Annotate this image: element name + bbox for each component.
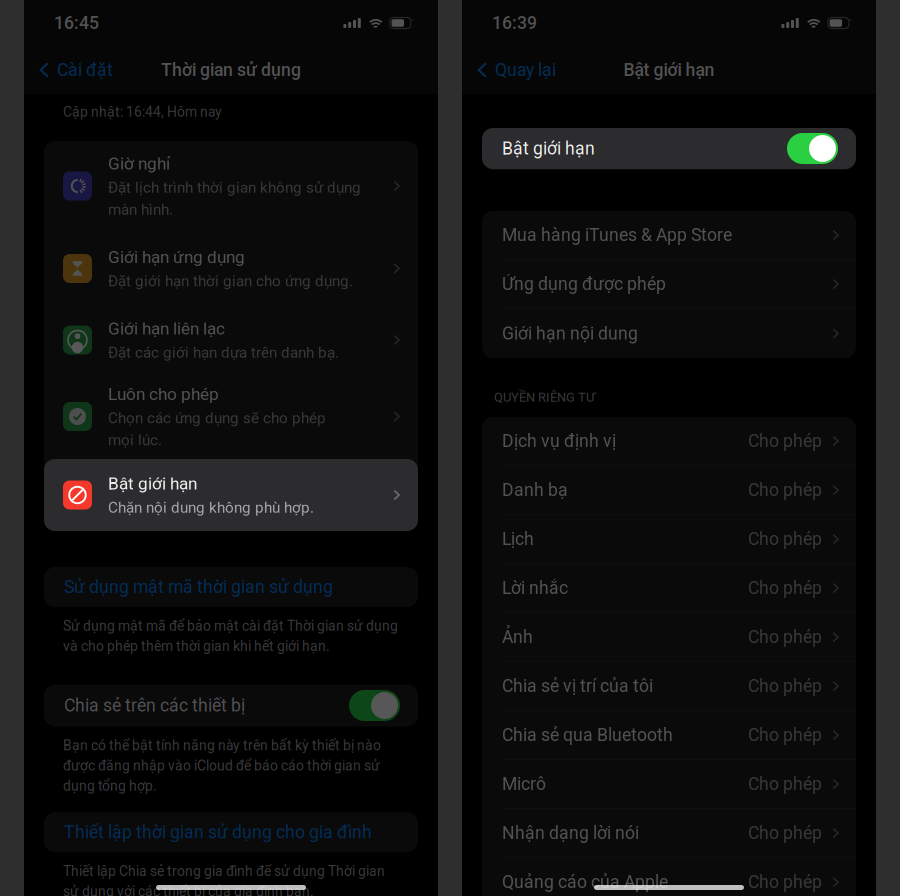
staticText: Mua hàng iTunes & App Store	[502, 225, 732, 245]
button[interactable]: Ảnh	[482, 613, 856, 662]
button[interactable]: Cài đặt	[32, 52, 117, 88]
button[interactable]: Micrô	[482, 760, 856, 809]
staticText: Ứng dụng được phép	[502, 274, 666, 294]
staticText: Đặt các giới hạn dựa trên danh bạ.	[108, 344, 339, 361]
button[interactable]: Dịch vụ định vị	[482, 417, 856, 466]
staticText: Cho phép	[748, 480, 822, 500]
staticText: Cho phép	[748, 872, 822, 892]
staticText: Lịch	[502, 529, 534, 549]
staticText: Chặn nội dung không phù hợp.	[108, 499, 314, 516]
staticText: Bật giới hạn	[502, 138, 595, 159]
staticText: 16:45	[54, 13, 99, 33]
staticText: Cập nhật: 16:44, Hôm nay	[63, 104, 222, 120]
staticText: Thời gian sử dụng	[161, 60, 301, 80]
button[interactable]: Lời nhắc	[482, 564, 856, 613]
staticText: Chặn nội dung không phù hợp.	[108, 499, 314, 516]
staticText: Cho phép	[748, 676, 822, 696]
button[interactable]: Lịch	[482, 515, 856, 564]
staticText: Cho phép	[748, 774, 822, 794]
staticText: 16:39	[492, 13, 537, 33]
staticText: Dịch vụ định vị	[502, 431, 616, 451]
staticText: Luôn cho phép	[108, 384, 219, 404]
staticText: Bạn có thể bật tính năng này trên bất kỳ…	[63, 737, 381, 794]
staticText: Thiết lập thời gian sử dụng cho gia đình	[64, 822, 372, 842]
staticText: Chọn các ứng dụng sẽ cho phép mọi lúc.	[108, 409, 326, 449]
staticText: Chia sẻ trên các thiết bị	[64, 695, 245, 716]
staticText: Ảnh	[502, 627, 533, 647]
staticText: Cho phép	[748, 823, 822, 843]
button[interactable]: Giới hạn liên lạc	[44, 306, 418, 374]
button[interactable]: Sử dụng mật mã thời gian sử dụng	[44, 567, 418, 607]
button[interactable]: Quảng cáo của Apple	[482, 858, 856, 896]
staticText: Quảng cáo của Apple	[502, 872, 668, 892]
button[interactable]: Chia sẻ vị trí của tôi	[482, 662, 856, 711]
staticText: Chia sẻ qua Bluetooth	[502, 725, 673, 745]
staticText: Danh bạ	[502, 480, 568, 500]
staticText: Bật giới hạn	[108, 473, 197, 494]
button[interactable]: Giới hạn ứng dụng	[44, 231, 418, 306]
button[interactable]: Bật giới hạn	[482, 129, 856, 170]
staticText: Sử dụng mật mã để bảo mật cài đặt Thời g…	[63, 618, 398, 654]
button[interactable]: Giờ nghỉ	[44, 141, 418, 231]
button[interactable]: Danh bạ	[482, 466, 856, 515]
staticText: Quay lại	[495, 60, 556, 80]
staticText: Nhận dạng lời nói	[502, 823, 639, 843]
staticText: Lời nhắc	[502, 578, 568, 598]
staticText: Thiết lập Chia sẻ trong gia đình để sử d…	[63, 863, 385, 896]
staticText: Giới hạn ứng dụng	[108, 247, 245, 267]
staticText: QUYỀN RIÊNG TƯ	[494, 390, 595, 405]
staticText: Bật giới hạn	[623, 60, 714, 80]
button[interactable]: Mua hàng iTunes & App Store	[482, 211, 856, 260]
staticText: Micrô	[502, 774, 546, 794]
staticText: Cho phép	[748, 725, 822, 745]
button[interactable]: Chia sẻ trên các thiết bị	[44, 684, 418, 726]
button[interactable]: Ứng dụng được phép	[482, 260, 856, 309]
button[interactable]: Bật giới hạn	[482, 128, 856, 169]
button[interactable]: Nhận dạng lời nói	[482, 809, 856, 858]
staticText: Cho phép	[748, 627, 822, 647]
staticText: Giới hạn liên lạc	[108, 318, 225, 339]
staticText: Đặt lịch trình thời gian không sử dụng m…	[108, 179, 361, 218]
staticText: Sử dụng mật mã thời gian sử dụng	[64, 577, 333, 597]
staticText: Cài đặt	[57, 60, 113, 80]
staticText: Cho phép	[748, 529, 822, 549]
staticText: Giới hạn nội dung	[502, 323, 638, 344]
button[interactable]: Thiết lập thời gian sử dụng cho gia đình	[44, 812, 418, 852]
staticText: Bật giới hạn	[502, 139, 595, 160]
button[interactable]: Chia sẻ qua Bluetooth	[482, 711, 856, 760]
button[interactable]: Luôn cho phép	[44, 374, 418, 459]
staticText: Đặt giới hạn thời gian cho ứng dụng.	[108, 272, 353, 290]
button[interactable]: Bật giới hạn	[44, 459, 418, 531]
staticText: Chia sẻ vị trí của tôi	[502, 676, 653, 696]
button[interactable]: Quay lại	[470, 52, 560, 88]
staticText: Giờ nghỉ	[108, 154, 170, 174]
staticText: Bật giới hạn	[108, 473, 197, 494]
button[interactable]: Bật giới hạn	[44, 459, 418, 531]
staticText: Cho phép	[748, 431, 822, 451]
button[interactable]: Giới hạn nội dung	[482, 309, 856, 358]
staticText: Cho phép	[748, 578, 822, 598]
